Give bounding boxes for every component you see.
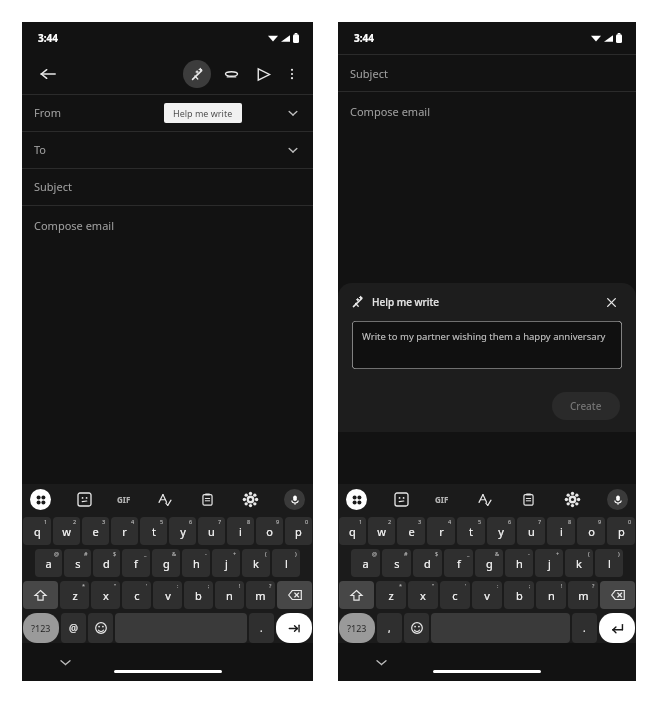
button[interactable]: Enter	[599, 613, 635, 643]
button[interactable]: r	[427, 517, 455, 545]
button[interactable]: q	[23, 517, 51, 545]
button[interactable]: Stickers	[75, 490, 93, 508]
button[interactable]: l	[272, 549, 300, 577]
button[interactable]: r	[111, 517, 138, 545]
button[interactable]: z	[376, 581, 406, 609]
button[interactable]: v	[153, 581, 182, 609]
button[interactable]: t	[457, 517, 485, 545]
button[interactable]: Settings	[241, 490, 259, 508]
button[interactable]: f	[444, 549, 473, 577]
button[interactable]: ?123	[339, 613, 375, 643]
button[interactable]: f	[122, 549, 150, 577]
button[interactable]: Apps	[30, 489, 51, 510]
button[interactable]: Create	[552, 392, 620, 420]
button[interactable]: e	[397, 517, 425, 545]
button[interactable]: c	[440, 581, 470, 609]
button[interactable]: Emoji	[404, 613, 429, 643]
button[interactable]: Stickers	[392, 490, 410, 508]
button[interactable]: Attach file	[217, 60, 245, 88]
button[interactable]: Translate	[475, 490, 493, 508]
button[interactable]: Voice input	[284, 489, 305, 510]
button[interactable]: Subject	[22, 168, 313, 205]
button[interactable]: Clipboard	[198, 490, 216, 508]
button[interactable]: z	[60, 581, 89, 609]
button[interactable]: @	[61, 613, 86, 643]
button[interactable]: b	[184, 581, 213, 609]
button[interactable]: More options	[279, 61, 305, 87]
staticText: To	[34, 142, 47, 157]
button[interactable]: m	[246, 581, 275, 609]
button[interactable]: Backspace	[600, 581, 635, 609]
button[interactable]: i	[227, 517, 254, 545]
button[interactable]: v	[472, 581, 502, 609]
button[interactable]: g	[475, 549, 503, 577]
button[interactable]: i	[547, 517, 575, 545]
button[interactable]: Translate	[155, 490, 173, 508]
button[interactable]: k	[242, 549, 270, 577]
button[interactable]: .	[572, 613, 597, 643]
button[interactable]: From	[22, 94, 313, 131]
button[interactable]: GIF	[435, 494, 449, 505]
button[interactable]: .	[249, 613, 274, 643]
button[interactable]: ,	[377, 613, 402, 643]
button[interactable]: w	[368, 517, 395, 545]
button[interactable]: Hide keyboard	[374, 655, 388, 669]
button[interactable]: j	[212, 549, 240, 577]
button[interactable]: a	[35, 549, 62, 577]
button[interactable]: q	[339, 517, 366, 545]
button[interactable]: ?123	[23, 613, 59, 643]
button[interactable]: b	[504, 581, 534, 609]
button[interactable]: Shift	[23, 581, 58, 609]
button[interactable]: t	[140, 517, 167, 545]
button[interactable]: Send	[249, 60, 277, 88]
button[interactable]: p	[285, 517, 312, 545]
button[interactable]: Expand	[283, 103, 303, 123]
button[interactable]: Next	[276, 613, 312, 643]
button[interactable]: Back	[32, 58, 64, 90]
button[interactable]: Hide keyboard	[58, 655, 72, 669]
button[interactable]: y	[487, 517, 515, 545]
button[interactable]: d	[413, 549, 442, 577]
button[interactable]: d	[93, 549, 120, 577]
button[interactable]: c	[122, 581, 151, 609]
button[interactable]: x	[408, 581, 438, 609]
button[interactable]: s	[382, 549, 411, 577]
button[interactable]: y	[169, 517, 196, 545]
button[interactable]: u	[517, 517, 545, 545]
button[interactable]: Voice input	[607, 489, 628, 510]
button[interactable]: Help me write	[183, 60, 211, 88]
staticText: Compose email	[34, 218, 114, 233]
button[interactable]: e	[82, 517, 109, 545]
button[interactable]: Emoji	[88, 613, 113, 643]
button[interactable]: m	[568, 581, 598, 609]
staticText: u	[528, 524, 535, 539]
button[interactable]: Apps	[346, 489, 367, 510]
button[interactable]: Close	[600, 291, 622, 313]
button[interactable]: a	[351, 549, 380, 577]
button[interactable]: x	[91, 581, 120, 609]
button[interactable]: To	[22, 131, 313, 168]
button[interactable]: k	[565, 549, 593, 577]
button[interactable]: Clipboard	[519, 490, 537, 508]
button[interactable]: Expand	[283, 140, 303, 160]
button[interactable]: Shift	[339, 581, 374, 609]
button[interactable]: Write to my partner wishing them a happy…	[352, 321, 622, 369]
button[interactable]: GIF	[117, 494, 131, 505]
button[interactable]: p	[607, 517, 635, 545]
button[interactable]: Settings	[563, 490, 581, 508]
button[interactable]: s	[64, 549, 91, 577]
button[interactable]: u	[198, 517, 225, 545]
button[interactable]: j	[535, 549, 563, 577]
button[interactable]: w	[53, 517, 80, 545]
button[interactable]: h	[182, 549, 210, 577]
button[interactable]: g	[152, 549, 180, 577]
button[interactable]: o	[256, 517, 283, 545]
button[interactable]: n	[215, 581, 244, 609]
button[interactable]: h	[505, 549, 533, 577]
button[interactable]: l	[595, 549, 623, 577]
button[interactable]: Backspace	[277, 581, 312, 609]
button[interactable]: o	[577, 517, 605, 545]
button[interactable]: n	[536, 581, 566, 609]
